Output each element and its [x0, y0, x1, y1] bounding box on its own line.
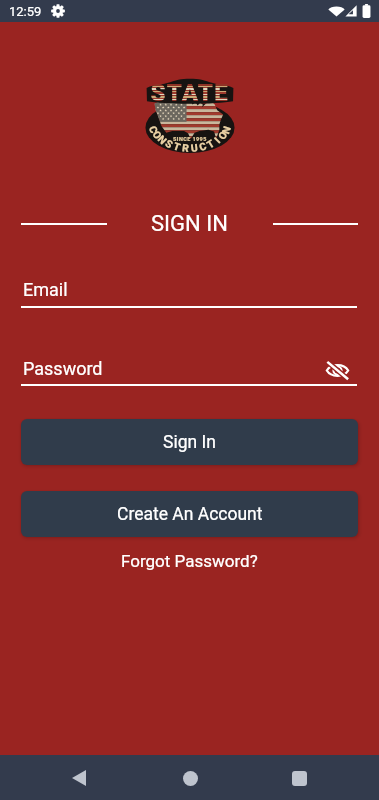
staticText: Sign In — [163, 432, 216, 453]
staticText: Forgot Password? — [121, 551, 258, 571]
button[interactable]: Home — [168, 756, 212, 800]
staticText: Password — [23, 358, 103, 379]
staticText: SIGN IN — [151, 211, 228, 237]
button[interactable]: Forgot Password? — [113, 548, 266, 574]
button[interactable]: Back — [57, 756, 101, 800]
button[interactable]: Toggle password visibility — [324, 357, 350, 383]
button[interactable]: Sign In — [21, 419, 358, 465]
staticText: Email — [23, 279, 68, 300]
staticText: Create An Account — [117, 504, 263, 525]
button[interactable]: Create An Account — [21, 491, 358, 537]
staticText: 12:59 — [9, 4, 42, 19]
button[interactable]: Recent apps — [277, 756, 321, 800]
